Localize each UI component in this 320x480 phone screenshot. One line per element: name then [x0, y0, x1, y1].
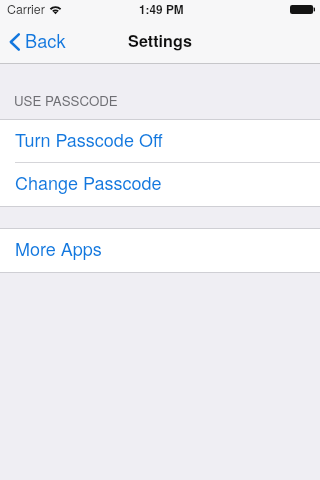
button[interactable]: More Apps — [0, 229, 320, 272]
button[interactable]: Turn Passcode Off — [0, 120, 320, 163]
staticText: USE PASSCODE — [14, 91, 118, 110]
other: Back — [9, 31, 22, 53]
staticText: Carrier — [7, 0, 45, 18]
staticText: 1:49 PM — [139, 1, 184, 18]
button[interactable]: Back — [9, 20, 320, 64]
other: Wi-Fi — [49, 6, 62, 15]
staticText: Back — [25, 27, 66, 53]
staticText: Settings — [128, 29, 192, 52]
button[interactable]: Change Passcode — [0, 163, 320, 206]
other: Battery — [290, 5, 315, 14]
staticText: Change Passcode — [15, 169, 162, 195]
staticText: More Apps — [15, 235, 102, 261]
staticText: Turn Passcode Off — [15, 126, 163, 152]
